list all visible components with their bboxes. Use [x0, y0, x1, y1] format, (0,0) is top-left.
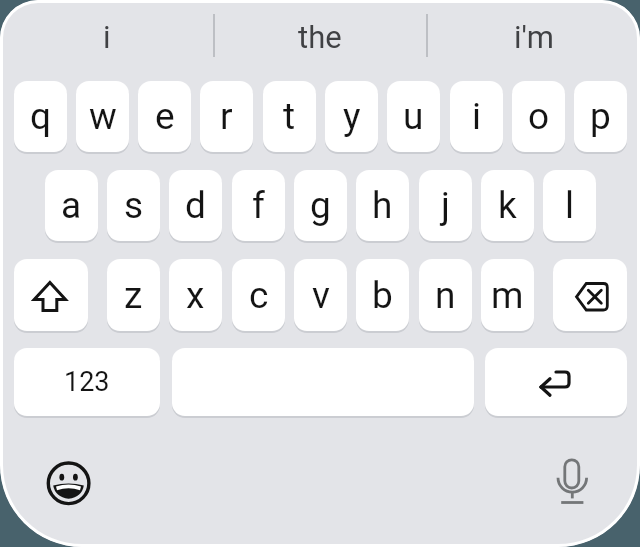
button[interactable] — [40, 455, 98, 513]
staticText: f — [252, 184, 265, 227]
staticText: g — [310, 184, 331, 227]
staticText: j — [441, 184, 450, 227]
button[interactable]: t — [263, 81, 316, 152]
button[interactable]: o — [512, 81, 565, 152]
staticText: z — [124, 274, 143, 317]
staticText: v — [312, 274, 330, 317]
staticText: b — [372, 274, 393, 317]
button[interactable]: z — [107, 259, 160, 331]
button[interactable]: u — [387, 81, 440, 152]
staticText: p — [590, 95, 611, 138]
button[interactable] — [14, 259, 88, 331]
staticText: e — [155, 95, 175, 138]
button[interactable]: j — [419, 170, 472, 241]
button[interactable]: x — [169, 259, 222, 331]
staticText: i'm — [514, 19, 554, 55]
staticText: the — [298, 19, 342, 55]
button[interactable]: b — [356, 259, 409, 331]
button[interactable]: n — [419, 259, 472, 331]
button[interactable]: 123 — [14, 348, 160, 416]
button[interactable]: g — [294, 170, 347, 241]
button[interactable]: the — [213, 8, 426, 66]
staticText: w — [89, 95, 117, 138]
button[interactable]: p — [574, 81, 627, 152]
staticText: k — [498, 184, 517, 227]
staticText: o — [528, 95, 550, 138]
staticText: u — [403, 95, 424, 138]
button[interactable]: e — [138, 81, 191, 152]
button[interactable] — [548, 452, 596, 510]
staticText: i — [472, 95, 481, 138]
staticText: x — [186, 274, 205, 317]
button[interactable]: h — [356, 170, 409, 241]
button[interactable]: f — [232, 170, 285, 241]
staticText: r — [220, 95, 233, 138]
button[interactable]: l — [543, 170, 596, 241]
button[interactable]: r — [200, 81, 253, 152]
staticText: d — [185, 184, 206, 227]
button[interactable]: w — [76, 81, 129, 152]
button[interactable] — [553, 259, 627, 331]
staticText: n — [435, 274, 456, 317]
staticText: h — [372, 184, 393, 227]
staticText: m — [491, 274, 524, 317]
button[interactable]: v — [294, 259, 347, 331]
button[interactable]: i'm — [427, 8, 640, 66]
button[interactable]: m — [481, 259, 534, 331]
button[interactable]: q — [14, 81, 67, 152]
button[interactable]: a — [45, 170, 98, 241]
staticText: l — [565, 184, 574, 227]
staticText: c — [249, 274, 269, 317]
staticText: 123 — [64, 366, 110, 398]
button[interactable]: c — [232, 259, 285, 331]
button[interactable]: i — [0, 8, 213, 66]
staticText: t — [283, 95, 296, 138]
button[interactable]: k — [481, 170, 534, 241]
staticText: y — [343, 95, 361, 138]
staticText: i — [103, 19, 111, 55]
button[interactable]: s — [107, 170, 160, 241]
staticText: q — [30, 95, 52, 138]
staticText: s — [124, 184, 144, 227]
button[interactable]: d — [169, 170, 222, 241]
staticText: a — [61, 184, 82, 227]
button[interactable]: i — [450, 81, 503, 152]
button[interactable]: y — [325, 81, 378, 152]
button[interactable] — [485, 348, 627, 416]
